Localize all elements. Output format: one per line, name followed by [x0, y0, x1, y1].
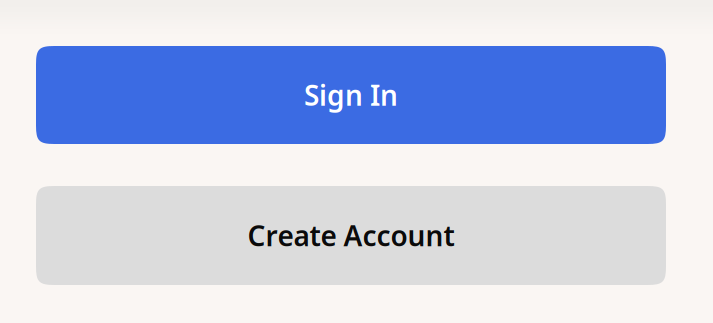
staticText: Create Account [247, 217, 454, 254]
staticText: Sign In [304, 76, 398, 114]
button[interactable]: Create Account [36, 186, 666, 285]
button[interactable]: Sign In [36, 46, 666, 144]
